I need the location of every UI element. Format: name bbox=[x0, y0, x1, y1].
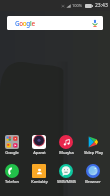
staticText: Aparat bbox=[33, 150, 46, 155]
button[interactable]: Browser bbox=[80, 164, 106, 184]
button[interactable]: Google bbox=[0, 135, 25, 155]
staticText: Muzyka bbox=[59, 150, 74, 155]
button[interactable]: Sklep Play bbox=[80, 135, 106, 155]
staticText: 100% bbox=[72, 3, 83, 8]
button[interactable]: Muzyka bbox=[53, 135, 79, 155]
staticText: Kontakty bbox=[31, 179, 48, 184]
button[interactable]: Telefon bbox=[0, 164, 25, 184]
staticText: SMS/MMS bbox=[57, 179, 76, 184]
button[interactable]: Aparat bbox=[26, 135, 52, 155]
other: Voice search bbox=[91, 19, 99, 27]
staticText: Google bbox=[5, 150, 19, 155]
button[interactable]: Google bbox=[7, 16, 103, 30]
staticText: Browser bbox=[85, 179, 101, 184]
staticText: Google bbox=[15, 19, 35, 28]
staticText: Sklep Play bbox=[84, 150, 103, 155]
button[interactable]: SMS/MMS bbox=[53, 164, 79, 184]
staticText: Telefon bbox=[5, 179, 19, 184]
staticText: 23:43 bbox=[95, 2, 108, 9]
button[interactable]: Kontakty bbox=[26, 164, 52, 184]
